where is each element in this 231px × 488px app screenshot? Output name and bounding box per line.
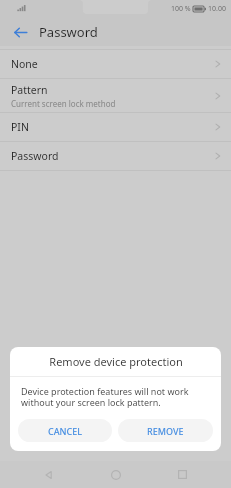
staticText: CANCEL: [48, 425, 83, 437]
staticText: Password: [11, 149, 59, 163]
staticText: Password: [39, 23, 98, 41]
button[interactable]: None: [0, 50, 231, 78]
staticText: Pattern: [11, 83, 48, 97]
button[interactable]: Pattern: [0, 79, 231, 112]
button[interactable]: Home: [99, 461, 133, 488]
button[interactable]: CANCEL: [18, 419, 112, 442]
button[interactable]: Back: [9, 21, 31, 43]
button[interactable]: REMOVE: [118, 419, 213, 442]
staticText: 100 %: [171, 4, 191, 14]
button[interactable]: Recent apps: [165, 461, 199, 488]
staticText: None: [11, 57, 38, 71]
button[interactable]: PIN: [0, 113, 231, 141]
staticText: PIN: [11, 120, 29, 134]
staticText: 10.00: [208, 4, 226, 14]
staticText: Current screen lock method: [11, 98, 116, 109]
staticText: REMOVE: [147, 425, 184, 437]
staticText: Remove device protection: [49, 354, 183, 369]
button[interactable]: Password: [0, 142, 231, 170]
staticText: Device protection features will not work…: [21, 385, 210, 409]
